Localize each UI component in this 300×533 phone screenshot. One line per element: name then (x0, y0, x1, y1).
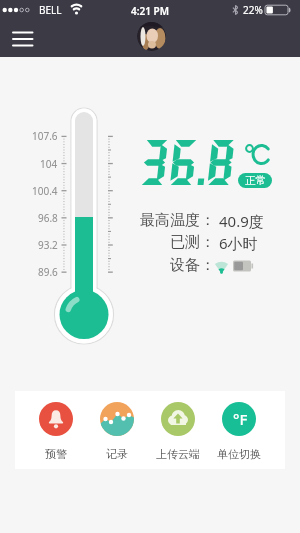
staticText: 设备： (170, 256, 215, 274)
staticText: 89.6 (38, 265, 58, 279)
button[interactable]: °F (208, 399, 269, 461)
staticText: °F (233, 409, 248, 429)
staticText: 22% (243, 3, 263, 17)
staticText: 单位切换 (217, 447, 261, 461)
staticText: 96.8 (38, 211, 58, 225)
staticText: 上传云端 (156, 447, 200, 461)
staticText: 记录 (106, 447, 128, 461)
button[interactable]: 正常 (238, 173, 272, 188)
staticText: 107.6 (32, 129, 58, 143)
staticText: 正常 (245, 174, 266, 187)
staticText: 最高温度： (140, 211, 215, 229)
staticText: 4:21 PM (131, 4, 169, 18)
staticText: 6小时 (219, 233, 258, 251)
staticText: 93.2 (38, 238, 58, 252)
staticText: 预警 (45, 447, 67, 461)
staticText: 104 (40, 157, 58, 171)
button[interactable]: 上传云端 (147, 399, 208, 461)
button[interactable] (4, 26, 40, 53)
staticText: 40.9度 (219, 211, 264, 229)
button[interactable]: 记录 (86, 399, 147, 461)
staticText: BELL (39, 3, 62, 17)
staticText: 100.4 (32, 184, 58, 198)
button[interactable]: 预警 (25, 399, 86, 461)
button[interactable] (137, 22, 166, 51)
staticText: 已测： (170, 233, 215, 251)
